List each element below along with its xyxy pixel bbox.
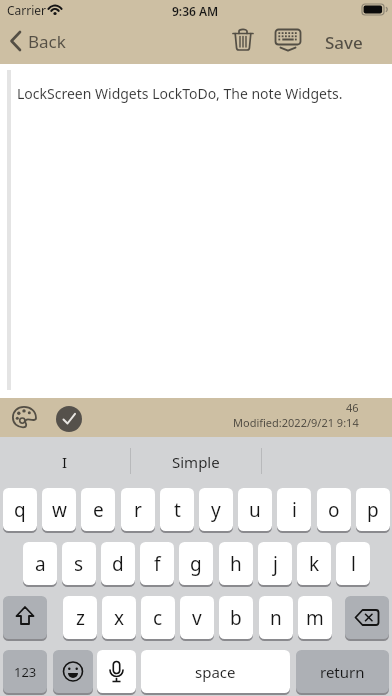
staticText: j [273,551,278,577]
button[interactable]: p [356,488,390,531]
staticText: k [309,551,320,577]
button[interactable]: l [336,542,370,585]
button[interactable]: c [141,596,175,639]
button[interactable]: e [81,488,115,531]
button[interactable]: d [101,542,135,585]
staticText: Carrier [7,2,47,18]
button[interactable] [53,650,93,693]
button[interactable] [12,406,38,428]
button[interactable]: 123 [3,650,47,693]
staticText: Modified:2022/9/21 9:14 [233,415,359,430]
staticText: v [192,605,202,631]
staticText: Back [28,30,66,53]
staticText: i [292,497,297,523]
staticText: a [35,551,46,577]
button[interactable] [232,29,254,51]
button[interactable]: j [258,542,292,585]
button[interactable]: m [298,596,332,639]
button[interactable]: b [219,596,253,639]
button[interactable]: s [62,542,96,585]
staticText: t [174,497,181,523]
staticText: r [134,497,142,523]
button[interactable] [345,596,389,639]
staticText: x [114,605,125,631]
button[interactable]: Simple [131,437,261,486]
button[interactable]: i [277,488,311,531]
staticText: e [93,497,104,523]
button[interactable] [97,650,136,693]
staticText: q [14,497,26,523]
staticText: f [154,551,161,577]
staticText: Simple [172,452,220,472]
button[interactable]: f [140,542,174,585]
button[interactable] [56,406,82,432]
staticText: o [328,497,340,523]
button[interactable]: Save [318,28,370,56]
staticText: s [74,551,84,577]
staticText: g [190,551,202,577]
button[interactable]: space [141,650,290,693]
staticText: y [211,497,221,523]
button[interactable]: k [297,542,331,585]
staticText: d [112,551,124,577]
staticText: 46 [346,400,359,415]
button[interactable]: q [3,488,37,531]
button[interactable]: o [317,488,351,531]
button[interactable] [3,596,47,639]
button[interactable]: x [102,596,136,639]
button[interactable]: t [160,488,194,531]
button[interactable]: g [179,542,213,585]
staticText: n [270,605,282,631]
staticText: 9:36 AM [172,3,219,19]
button[interactable]: w [42,488,76,531]
staticText: h [230,551,242,577]
staticText: I [62,452,68,472]
staticText: 123 [14,663,37,681]
staticText: space [195,662,236,682]
button[interactable]: h [219,542,253,585]
staticText: return [320,662,365,682]
button[interactable]: a [23,542,57,585]
staticText: l [351,551,356,577]
button[interactable]: return [296,650,389,693]
staticText: z [76,605,85,631]
staticText: w [52,497,67,523]
staticText: Save [325,31,363,54]
button[interactable]: u [238,488,272,531]
button[interactable]: y [199,488,233,531]
staticText: p [367,497,379,523]
staticText: LockScreen Widgets LockToDo, The note Wi… [17,84,343,103]
button[interactable]: z [63,596,97,639]
button[interactable]: Back [8,28,76,56]
button[interactable]: I [0,437,130,486]
staticText: b [230,605,242,631]
button[interactable] [275,29,301,51]
button[interactable]: n [259,596,293,639]
staticText: c [153,605,163,631]
staticText: m [306,605,324,631]
button[interactable]: v [180,596,214,639]
button[interactable]: r [121,488,155,531]
staticText: u [249,497,261,523]
